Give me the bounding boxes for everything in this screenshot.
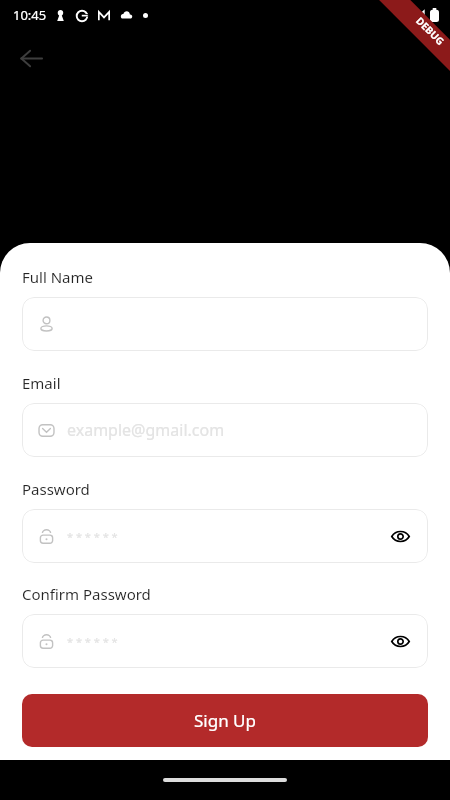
staticText: * * * * * * bbox=[67, 529, 118, 544]
button[interactable]: example@gmail.com bbox=[22, 403, 428, 457]
button[interactable]: Toggle password visibility bbox=[386, 627, 414, 655]
staticText: Full Name bbox=[22, 267, 93, 287]
staticText: Confirm Password bbox=[22, 584, 151, 604]
button[interactable]: * * * * * * bbox=[22, 509, 428, 563]
staticText: Sign Up bbox=[194, 709, 256, 732]
button[interactable]: Back bbox=[11, 38, 51, 78]
staticText: example@gmail.com bbox=[67, 419, 225, 441]
staticText: * * * * * * bbox=[67, 634, 118, 649]
button[interactable]: * * * * * * bbox=[22, 614, 428, 668]
staticText: Password bbox=[22, 479, 90, 499]
button[interactable] bbox=[22, 297, 428, 351]
staticText: DEBUG bbox=[413, 14, 448, 48]
button[interactable]: Sign Up bbox=[22, 694, 428, 747]
staticText: 10:45 bbox=[13, 6, 47, 24]
staticText: Email bbox=[22, 373, 61, 393]
button[interactable]: Toggle password visibility bbox=[386, 522, 414, 550]
